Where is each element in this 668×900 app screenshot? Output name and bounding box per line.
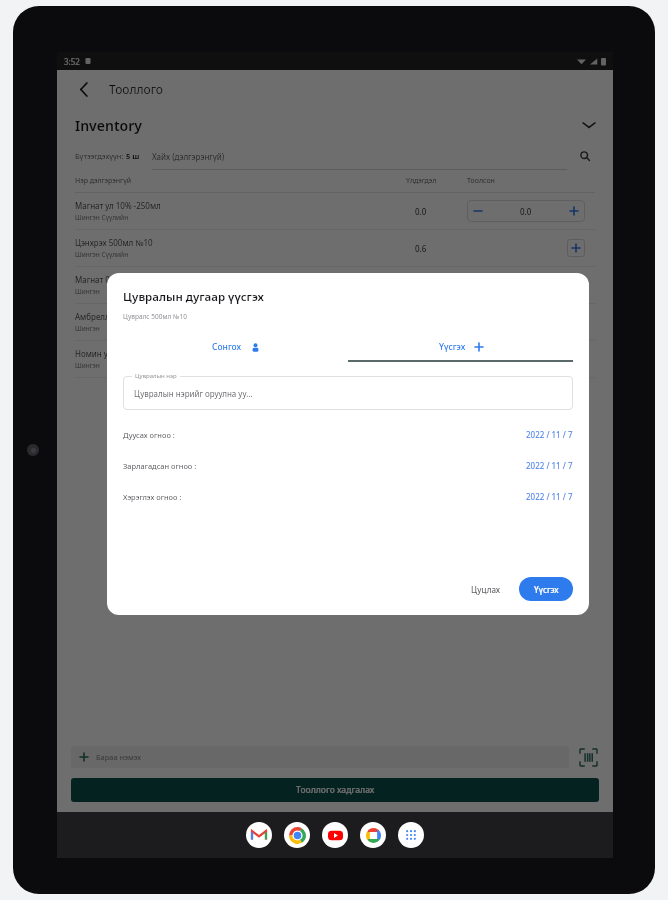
staticText: Номин ундаа <box>75 348 127 359</box>
button[interactable]: Add <box>567 239 585 257</box>
button[interactable]: Хэрэглэх огноо : <box>123 481 573 512</box>
button[interactable]: Decrease <box>467 200 489 222</box>
button[interactable]: Back <box>57 70 613 108</box>
staticText: 2022 / 11 / 7 <box>526 460 573 471</box>
staticText: Зарлагадсан огноо : <box>123 461 197 471</box>
staticText: Шингэн Сүүлийн <box>75 213 129 222</box>
staticText: Цуцлах <box>471 584 501 595</box>
staticText: 0.0 <box>415 354 427 365</box>
button[interactable]: Chrome <box>284 822 310 848</box>
button[interactable]: Back <box>71 76 97 102</box>
button[interactable]: Add <box>567 350 585 368</box>
staticText: Цувралын нэрийг оруулна уу... <box>134 388 253 399</box>
button[interactable]: All apps <box>398 822 424 848</box>
staticText: Магнат ул 10% -250мл <box>75 200 161 211</box>
button[interactable]: Inventory <box>57 108 613 142</box>
staticText: Тооллого <box>109 81 163 97</box>
button[interactable]: Photos <box>360 822 386 848</box>
staticText: Шингэн Сүүлийн <box>75 250 129 259</box>
staticText: 0.0 <box>520 206 532 217</box>
staticText: 5 ш <box>126 151 140 161</box>
staticText: Шингэн <box>75 324 100 333</box>
staticText: Амбрелла ус <box>75 311 124 322</box>
button[interactable]: Сонгох <box>123 334 348 360</box>
staticText: 0.6 <box>415 243 427 254</box>
staticText: Нэр дэлгэрэнгүй <box>75 176 132 186</box>
staticText: Үлдэгдэл <box>406 176 437 186</box>
staticText: Тооллого хадгалах <box>296 784 375 796</box>
staticText: Бараа нэмэх <box>96 752 142 762</box>
staticText: Цувралын дугаар үүсгэх <box>123 289 264 305</box>
button[interactable]: Дуусах огноо : <box>123 419 573 450</box>
staticText: Шингэн <box>75 287 100 296</box>
staticText: Цувралс 500мл №10 <box>123 312 187 321</box>
staticText: Хайх (дэлгэрэнгүй) <box>152 151 225 162</box>
staticText: Цэнхрэх 500мл №10 <box>75 237 153 248</box>
button[interactable]: Цэнхрэх 500мл №10 <box>57 230 613 267</box>
button[interactable]: Тооллого хадгалах <box>71 778 599 802</box>
staticText: Шингэн <box>75 361 100 370</box>
button[interactable]: YouTube <box>322 822 348 848</box>
button[interactable]: Цуцлах <box>461 578 511 601</box>
staticText: Магнат 0.5 <box>75 274 117 285</box>
staticText: Inventory <box>75 116 142 135</box>
button[interactable]: Зарлагадсан огноо : <box>123 450 573 481</box>
button[interactable]: Магнат ул 10% -250мл <box>57 193 613 230</box>
button[interactable]: Амбрелла ус <box>57 304 613 341</box>
button[interactable]: Номин ундаа <box>57 341 613 378</box>
button[interactable]: Магнат 0.5 <box>57 267 613 304</box>
staticText: Цувралын нэр <box>135 372 177 380</box>
button[interactable]: Search <box>575 146 595 166</box>
button[interactable] <box>123 376 573 410</box>
staticText: Үүсгэх <box>439 341 466 353</box>
staticText: 3:52 <box>64 56 80 67</box>
button[interactable]: Үүсгэх <box>519 577 573 601</box>
staticText: 0.0 <box>415 206 427 217</box>
staticText: Хэрэглэх огноо : <box>123 492 182 502</box>
staticText: Сонгох <box>212 341 242 353</box>
staticText: Тоолсон <box>467 176 495 186</box>
button[interactable]: Scan barcode <box>577 746 599 768</box>
staticText: Дуусах огноо : <box>123 430 175 440</box>
staticText: Бүтээгдэхүүн: <box>75 151 126 161</box>
button[interactable]: Increase <box>563 200 585 222</box>
button[interactable]: Gmail <box>246 822 272 848</box>
button[interactable]: Үүсгэх <box>348 334 573 360</box>
staticText: 2022 / 11 / 7 <box>526 491 573 502</box>
button[interactable]: Бараа нэмэх <box>71 746 569 768</box>
button[interactable]: Хайх (дэлгэрэнгүй) <box>152 142 567 170</box>
staticText: Үүсгэх <box>534 584 559 595</box>
staticText: 2022 / 11 / 7 <box>526 429 573 440</box>
